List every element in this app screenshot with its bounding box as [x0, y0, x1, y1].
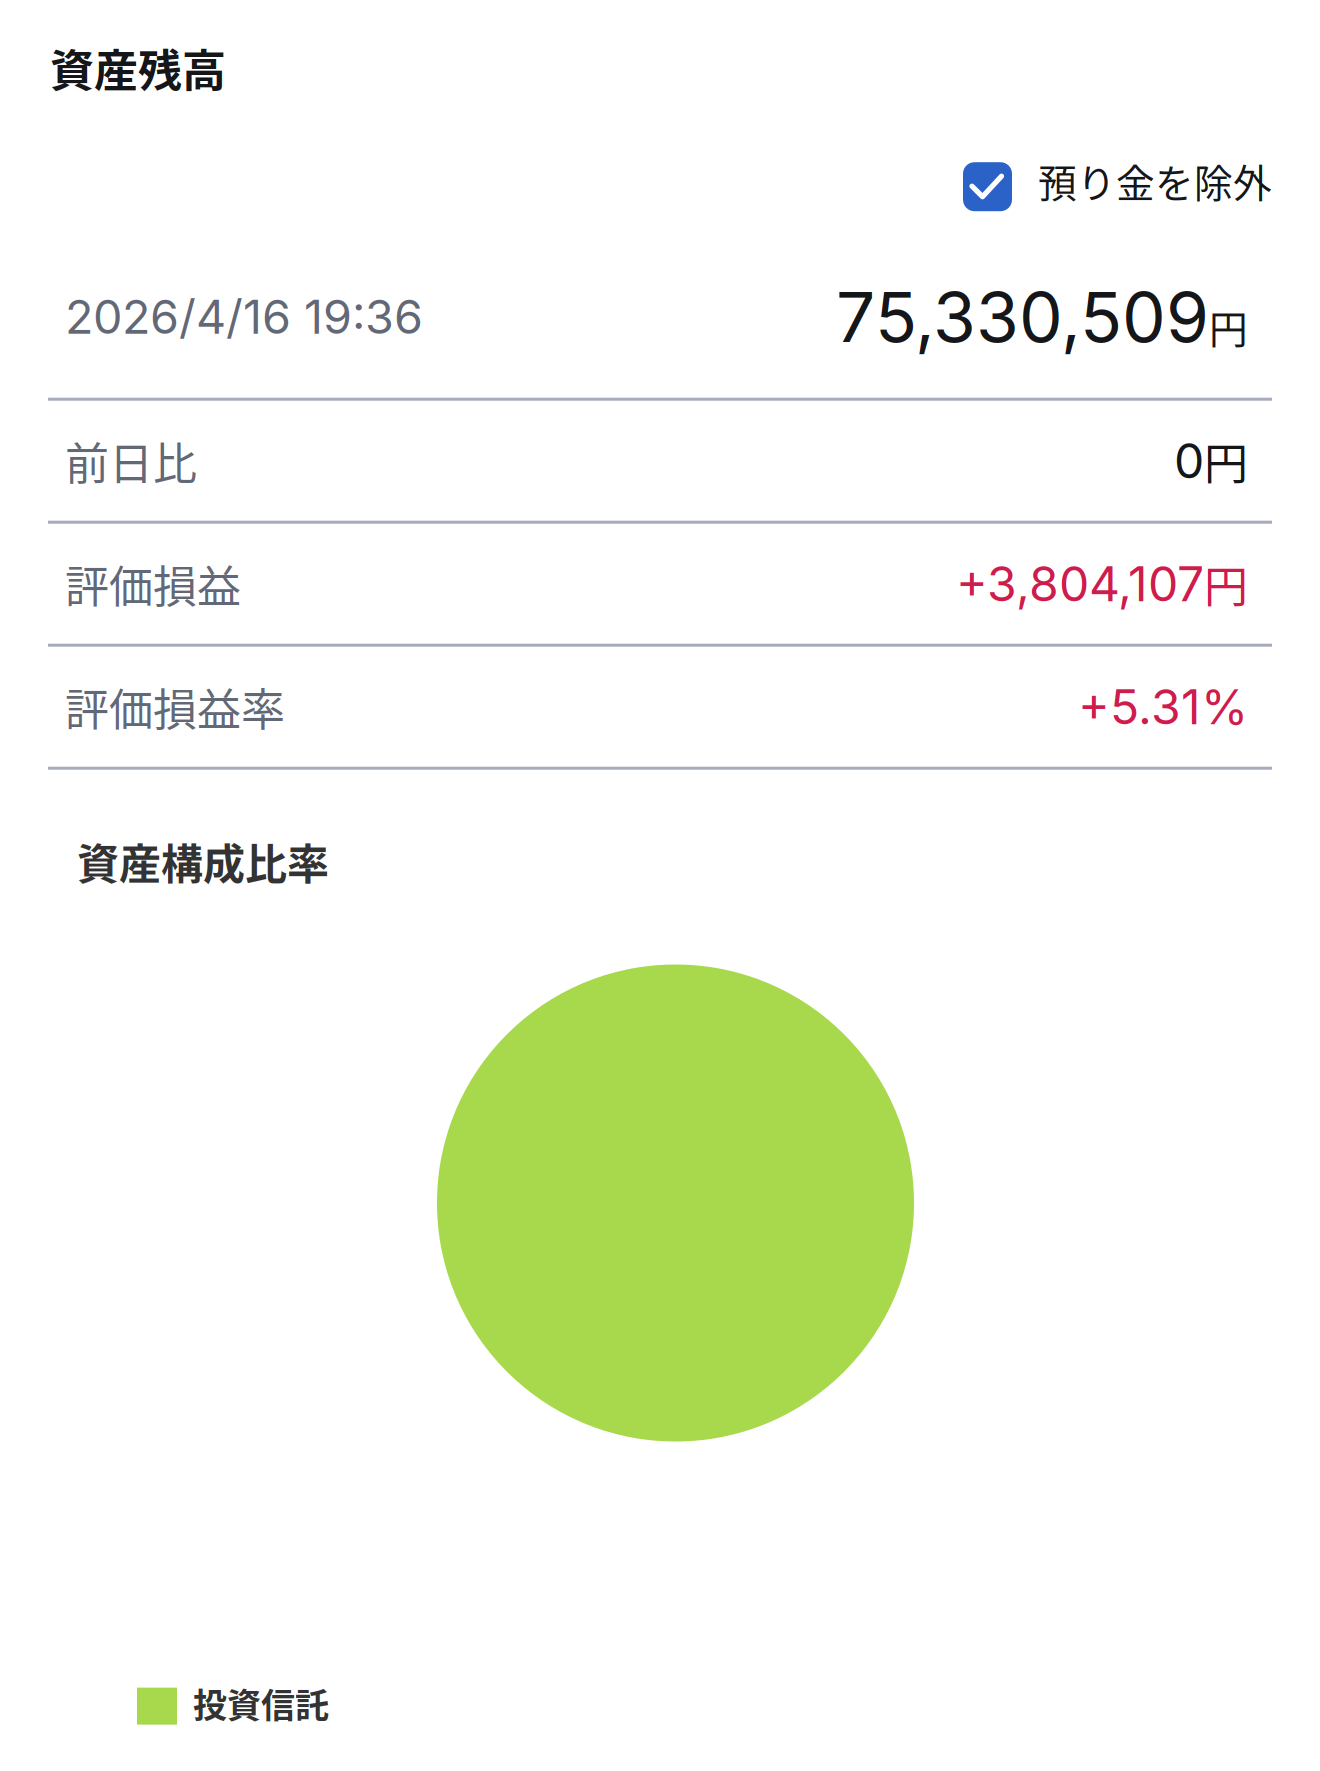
- staticText: 評価損益率: [65, 675, 285, 738]
- staticText: 0: [1174, 432, 1204, 490]
- staticText: 円: [1209, 299, 1248, 355]
- staticText: 75,330,509: [836, 275, 1209, 359]
- staticText: +3,804,107: [956, 555, 1204, 613]
- staticText: 預り金を除外: [1038, 153, 1272, 209]
- staticText: 円: [1204, 429, 1248, 492]
- staticText: 前日比: [65, 429, 197, 492]
- staticText: 資産残高: [50, 36, 226, 100]
- staticText: 資産構成比率: [77, 831, 329, 891]
- button[interactable]: 預り金を除外: [965, 151, 1272, 219]
- staticText: 投資信託: [193, 1678, 329, 1728]
- staticText: 円: [1204, 552, 1248, 615]
- staticText: 評価損益: [65, 552, 241, 615]
- staticText: 2026/4/16 19:36: [65, 288, 423, 345]
- staticText: +5.31%: [1078, 678, 1248, 736]
